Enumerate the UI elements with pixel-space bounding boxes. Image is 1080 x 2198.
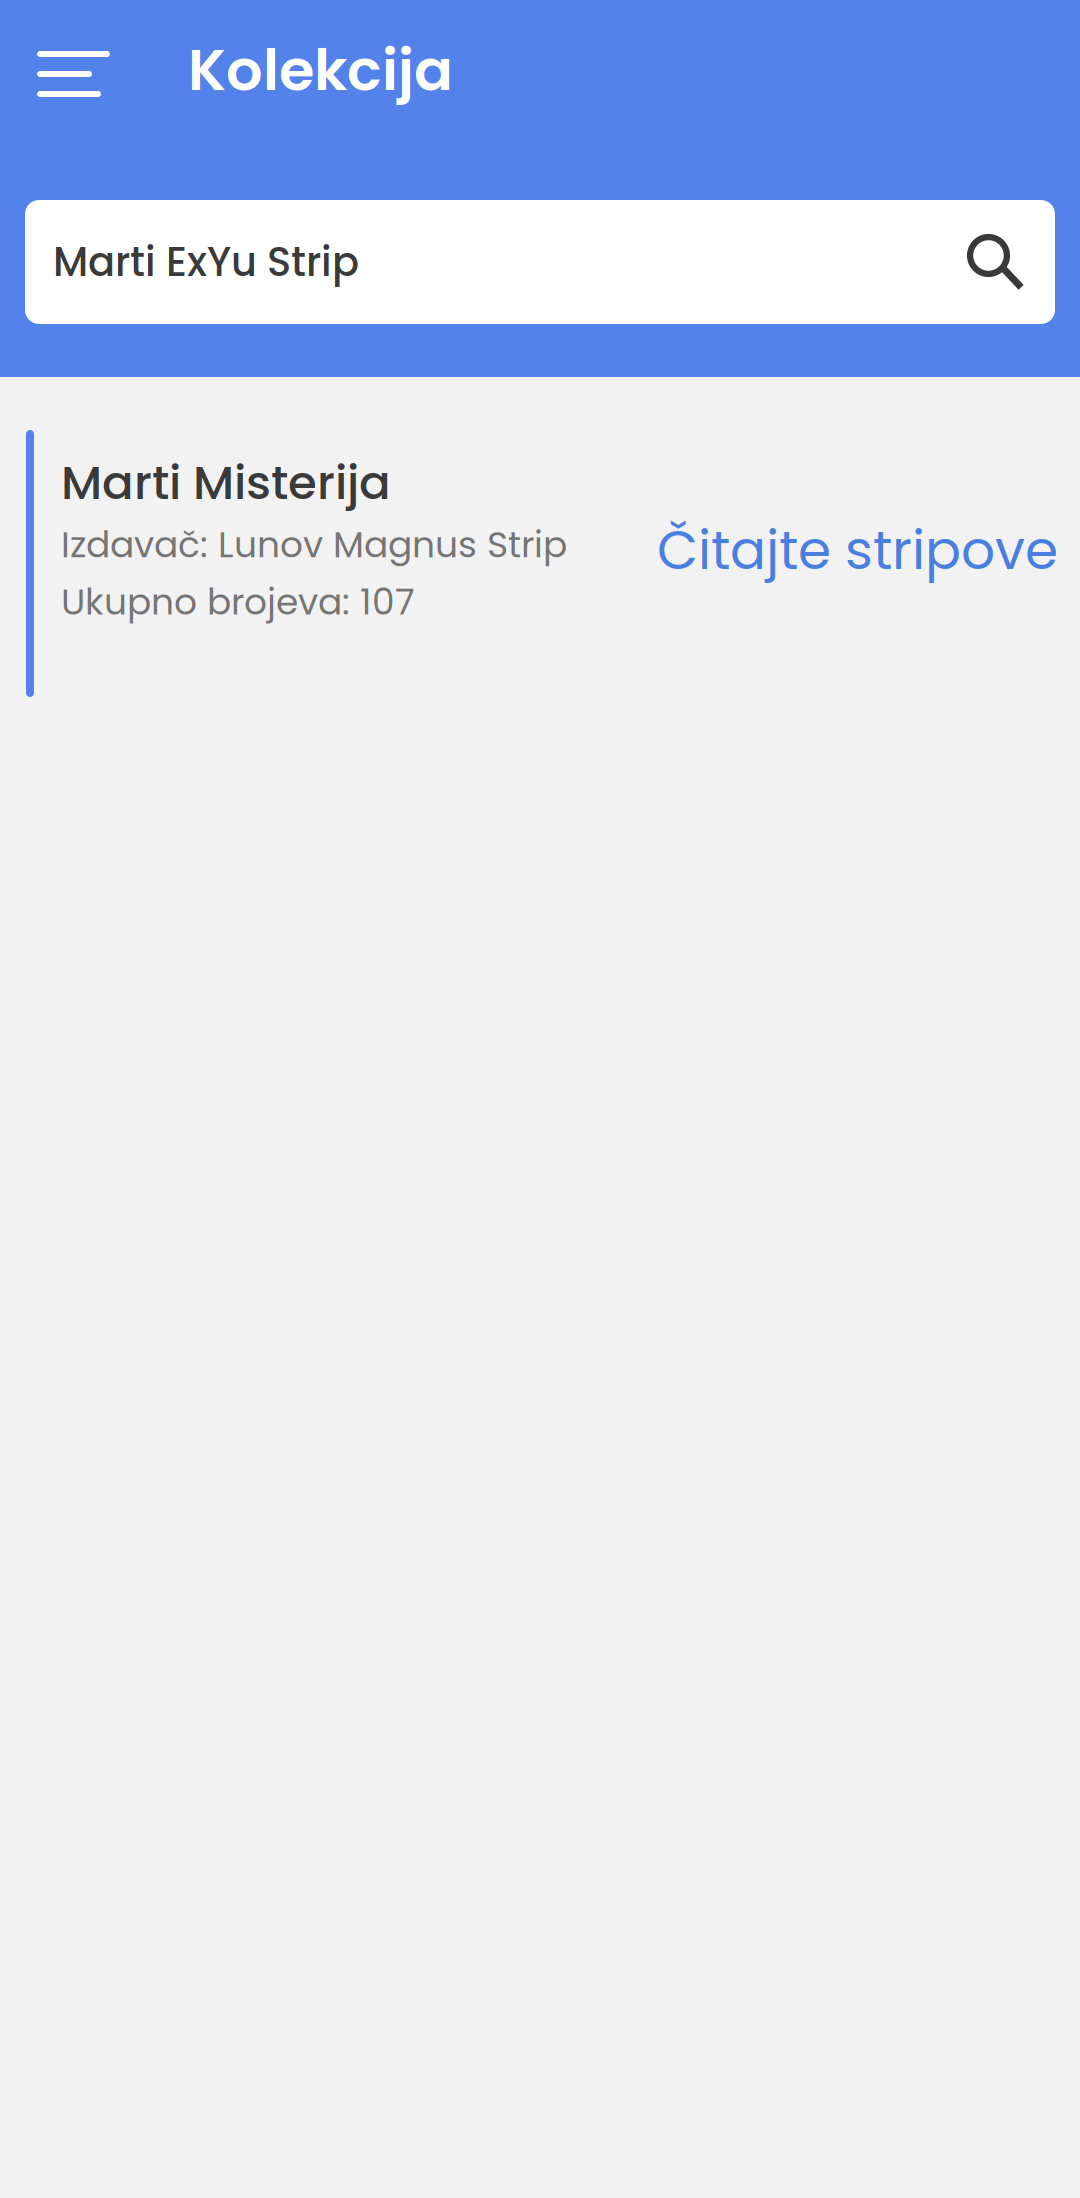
staticText: Izdavač: Lunov Magnus Strip bbox=[61, 519, 567, 570]
button[interactable]: Marti ExYu Strip bbox=[25, 200, 1055, 324]
button[interactable]: Marti Misterija bbox=[26, 377, 1080, 697]
staticText: Marti Misterija bbox=[61, 450, 391, 515]
staticText: Kolekcija bbox=[188, 30, 453, 110]
staticText: Ukupno brojeva: 107 bbox=[61, 577, 415, 627]
button[interactable]: Menu bbox=[0, 25, 188, 115]
staticText: Čitajte stripove bbox=[657, 513, 1058, 588]
staticText: Marti ExYu Strip bbox=[53, 234, 359, 290]
